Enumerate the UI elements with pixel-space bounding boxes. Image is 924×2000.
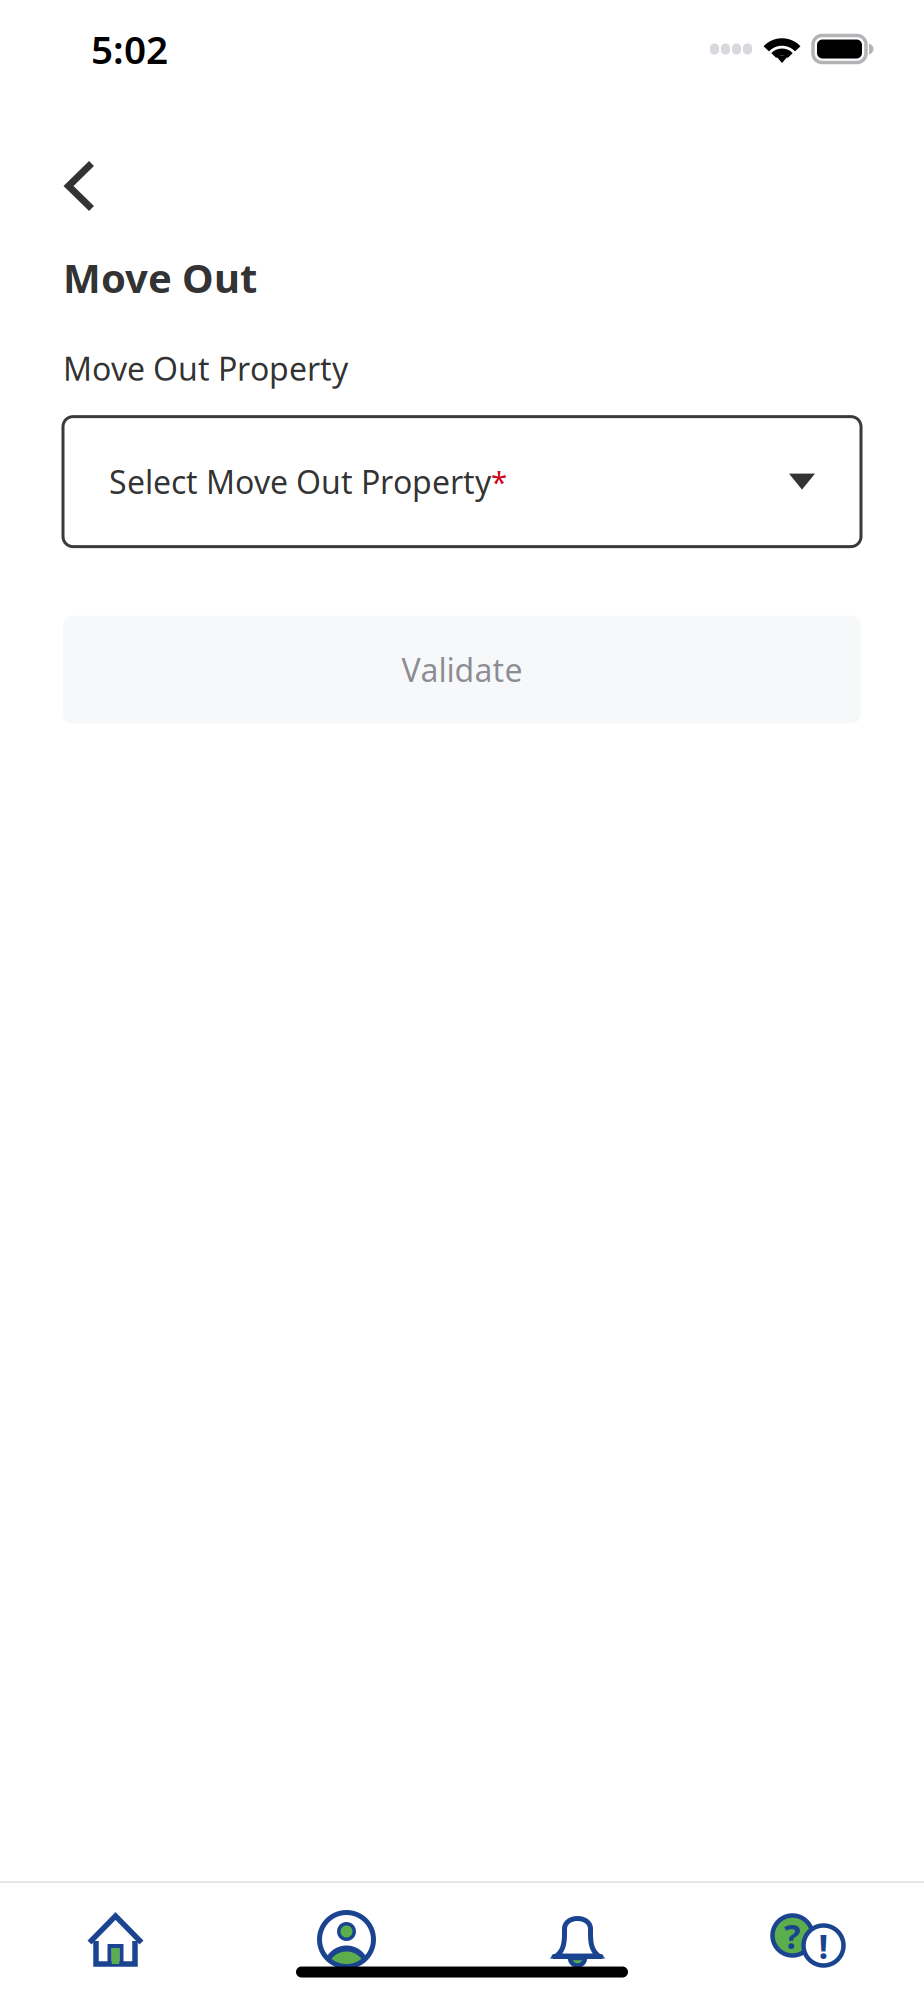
staticText: Select Move Out Property — [109, 460, 491, 503]
staticText: * — [491, 462, 507, 501]
staticText: ! — [818, 1922, 828, 1968]
staticText: Validate — [401, 648, 522, 691]
button[interactable]: Notifications — [462, 1896, 693, 1982]
staticText: ? — [784, 1912, 801, 1958]
button[interactable]: Back — [0, 98, 95, 228]
staticText: Move Out Property — [63, 347, 348, 390]
staticText: Move Out — [63, 251, 257, 304]
button[interactable]: Validate — [63, 616, 861, 724]
staticText: 5:02 — [91, 23, 168, 75]
button[interactable]: Help — [693, 1896, 924, 1982]
button[interactable]: Select Move Out Property — [63, 417, 861, 547]
button[interactable]: Home — [0, 1896, 231, 1982]
button[interactable]: Profile — [231, 1896, 462, 1982]
